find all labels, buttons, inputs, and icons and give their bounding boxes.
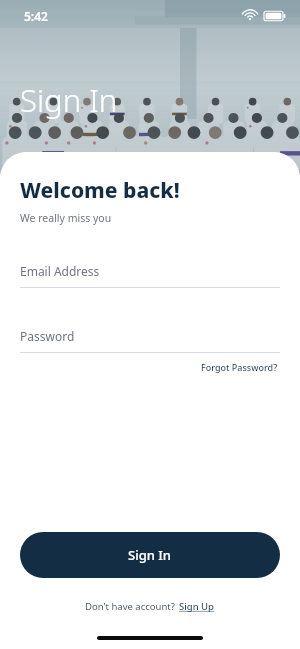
staticText: Don't have account? [85,600,178,613]
staticText: Password [20,328,75,344]
staticText: Sign In [128,546,172,564]
button[interactable]: Sign In [20,532,280,578]
staticText: Email Address [20,263,100,279]
button[interactable]: Sign Up [178,598,216,615]
button[interactable]: Password [20,328,280,353]
button[interactable]: Forgot Password? [199,359,280,375]
staticText: Sign In [20,79,118,121]
staticText: Welcome back! [20,176,180,205]
staticText: 5:42 [24,8,48,24]
staticText: We really miss you [20,211,112,225]
button[interactable]: Email Address [20,263,280,288]
